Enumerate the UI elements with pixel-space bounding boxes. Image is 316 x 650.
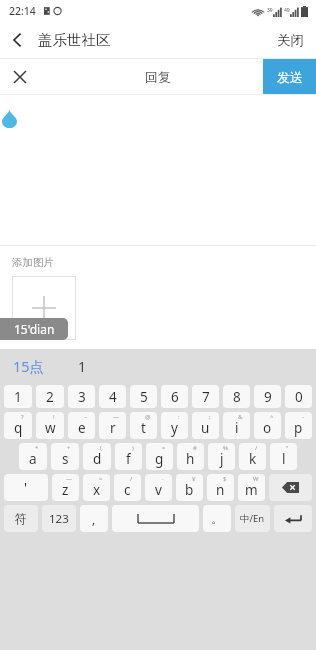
staticText: 7 (202, 388, 210, 406)
staticText: h (186, 450, 195, 468)
button[interactable]: Space (112, 505, 199, 532)
button[interactable]: 1 (4, 385, 32, 408)
button[interactable]: m (238, 474, 265, 501)
button[interactable]: ' (4, 474, 48, 501)
button[interactable]: 3 (68, 385, 95, 408)
staticText: 中/En (240, 512, 265, 525)
button[interactable]: v (145, 474, 172, 501)
staticText: 4 (109, 388, 117, 406)
staticText: l (282, 450, 286, 468)
button[interactable]: 8 (223, 385, 250, 408)
staticText: ; (209, 413, 211, 421)
staticText: ) (132, 444, 134, 452)
staticText: d (93, 450, 102, 468)
button[interactable]: l (270, 443, 297, 470)
button[interactable]: e (68, 412, 95, 439)
button[interactable]: 0 (285, 385, 312, 408)
button[interactable]: 2 (36, 385, 64, 408)
staticText: 15'dian (14, 321, 55, 337)
staticText: w (45, 419, 56, 437)
button[interactable]: o (254, 412, 281, 439)
staticText: # (193, 444, 197, 452)
staticText: 盖乐世社区 (38, 31, 111, 49)
staticText: y (171, 419, 178, 437)
staticText: x (93, 481, 101, 499)
button[interactable]: Add picture (12, 276, 76, 340)
staticText: g (155, 450, 164, 468)
button[interactable]: 发送 (263, 59, 316, 94)
staticText: n (216, 481, 225, 499)
staticText: ¥ (192, 475, 196, 483)
button[interactable]: n (207, 474, 234, 501)
button[interactable]: k (239, 443, 266, 470)
button[interactable]: 7 (192, 385, 219, 408)
staticText: j (220, 450, 224, 468)
button[interactable]: 1 (78, 357, 87, 376)
button[interactable]: d (83, 443, 111, 470)
staticText: 22:14 (9, 4, 36, 18)
staticText: 9 (264, 388, 272, 406)
staticText: , (92, 511, 96, 527)
button[interactable]: 6 (161, 385, 188, 408)
staticText: 添加图片 (12, 256, 54, 269)
button[interactable]: 5 (130, 385, 157, 408)
staticText: z (62, 481, 69, 499)
button[interactable]: 关闭 (265, 22, 316, 58)
button[interactable]: f (115, 443, 142, 470)
staticText: c (124, 481, 131, 499)
staticText: 回复 (145, 69, 171, 85)
button[interactable]: q (4, 412, 32, 439)
button[interactable]: 9 (254, 385, 281, 408)
button[interactable]: 4 (99, 385, 126, 408)
staticText: s (62, 450, 69, 468)
button[interactable]: r (99, 412, 126, 439)
staticText: 1 (14, 388, 22, 406)
staticText: ^ (270, 413, 274, 421)
button[interactable]: p (285, 412, 312, 439)
staticText: “ (286, 444, 289, 452)
button[interactable]: y (161, 412, 188, 439)
button[interactable]: w (36, 412, 64, 439)
staticText: p (294, 419, 303, 437)
button[interactable]: Enter (274, 505, 312, 532)
button[interactable]: i (223, 412, 250, 439)
staticText: $ (223, 475, 227, 483)
button[interactable]: t (130, 412, 157, 439)
button[interactable]: z (52, 474, 79, 501)
staticText: 6 (171, 388, 179, 406)
staticText: W (253, 475, 259, 483)
staticText: t (141, 419, 146, 437)
staticText: b (185, 481, 194, 499)
button[interactable]: 中/En (235, 505, 270, 532)
button[interactable]: b (176, 474, 203, 501)
staticText: k (249, 450, 257, 468)
button[interactable]: x (83, 474, 110, 501)
button[interactable]: g (146, 443, 173, 470)
staticText: 发送 (277, 69, 303, 85)
button[interactable]: 123 (42, 505, 76, 532)
staticText: v (155, 481, 162, 499)
button[interactable]: Close (0, 59, 40, 94)
button[interactable]: u (192, 412, 219, 439)
button[interactable]: a (19, 443, 47, 470)
staticText: ' (24, 479, 28, 497)
button[interactable]: c (114, 474, 141, 501)
button[interactable]: Backspace (269, 474, 312, 501)
button[interactable]: , (80, 505, 108, 532)
button[interactable]: h (177, 443, 204, 470)
staticText: 39 (267, 7, 273, 14)
button[interactable]: 。 (203, 505, 231, 532)
staticText: m (245, 481, 258, 499)
button[interactable]: j (208, 443, 235, 470)
button[interactable]: 符 (4, 505, 38, 532)
staticText: r (110, 419, 116, 437)
staticText: 关闭 (277, 32, 304, 49)
button[interactable]: s (51, 443, 79, 470)
button[interactable]: Back (0, 22, 34, 58)
staticText: o (263, 419, 272, 437)
staticText: 49 (284, 7, 290, 14)
button[interactable]: 15点 (13, 356, 45, 376)
staticText: / (255, 444, 258, 452)
staticText: i (235, 419, 239, 437)
staticText: f (126, 450, 131, 468)
